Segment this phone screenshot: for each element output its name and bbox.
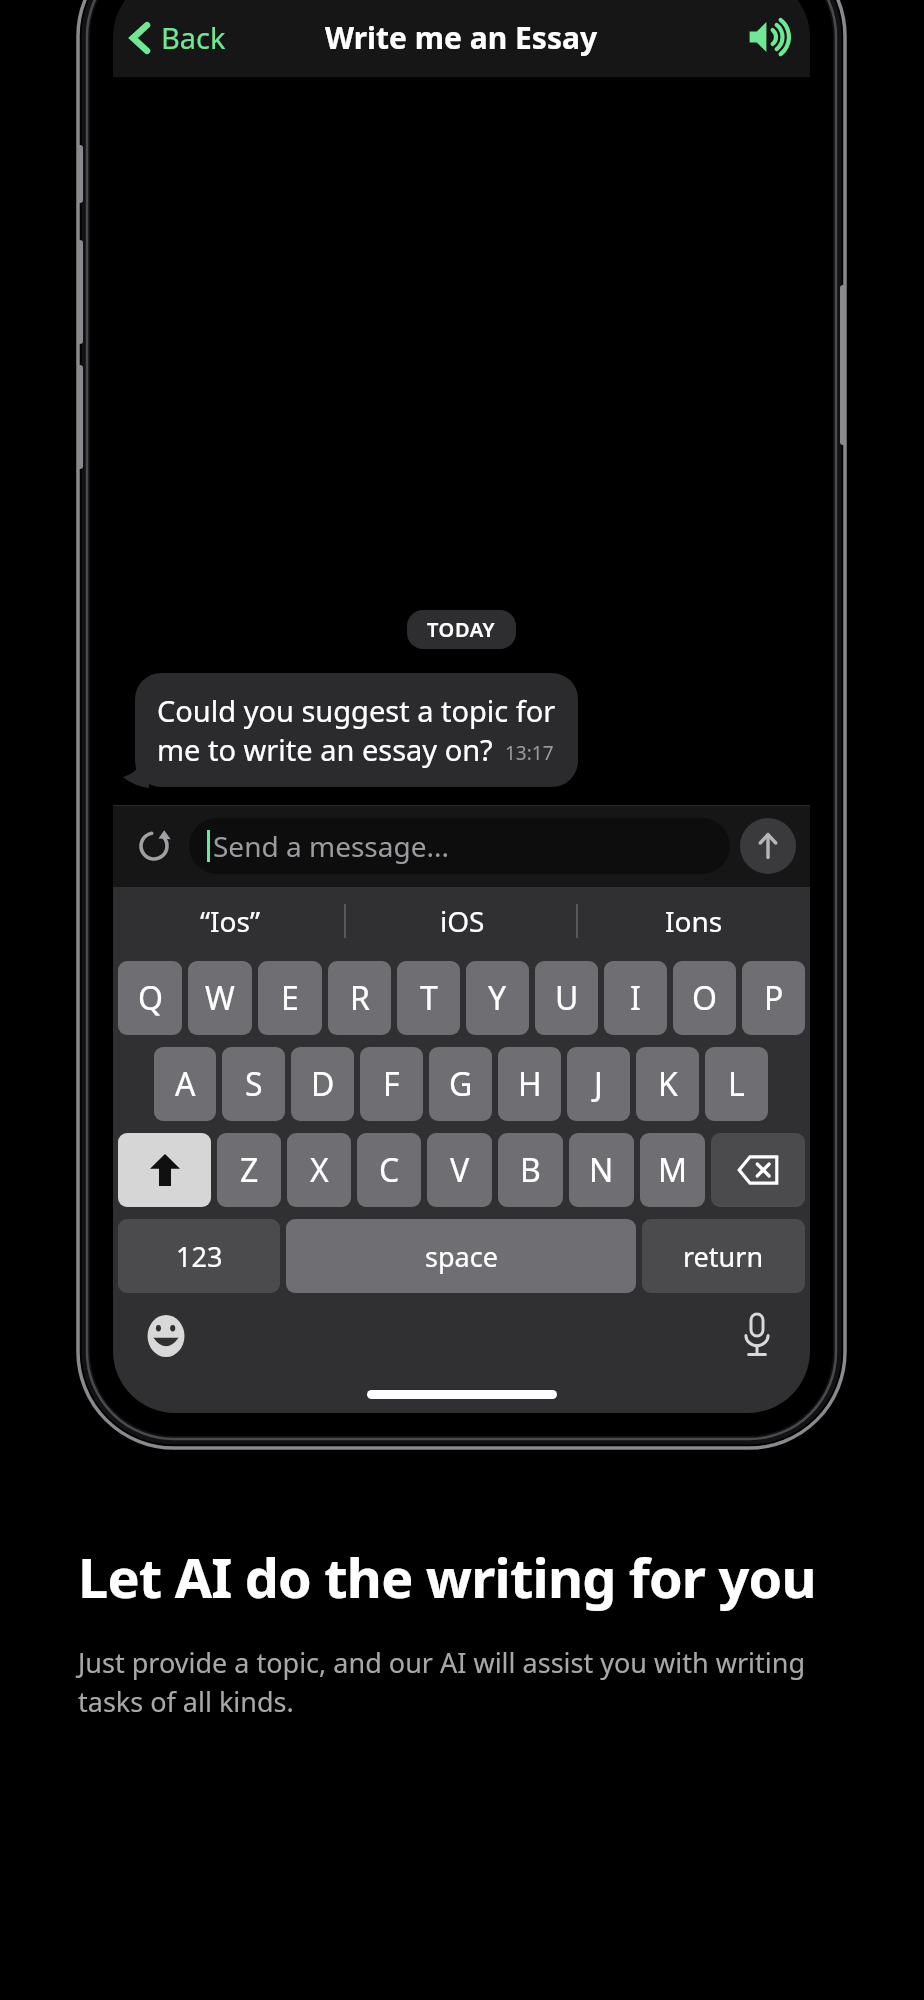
button[interactable]: Send a message... [189,818,730,874]
staticText: E [281,976,299,1020]
button[interactable]: Refresh [127,819,181,873]
staticText: iOS [440,902,485,940]
button[interactable]: Dictation [728,1307,786,1365]
staticText: space [425,1238,498,1275]
staticText: return [683,1238,764,1275]
button[interactable]: J [567,1047,630,1121]
staticText: O [692,976,717,1020]
button[interactable]: Y [466,961,529,1035]
button[interactable]: O [673,961,736,1035]
staticText: Back [161,18,226,57]
staticText: N [589,1148,614,1192]
staticText: me to write an essay on? [157,730,493,769]
button[interactable]: D [291,1047,354,1121]
button[interactable]: W [188,961,252,1035]
staticText: T [420,976,438,1020]
staticText: Y [488,976,507,1020]
button[interactable]: 123 [118,1219,280,1293]
button[interactable]: P [742,961,805,1035]
button[interactable]: T [397,961,460,1035]
button[interactable]: R [328,961,391,1035]
button[interactable]: G [429,1047,492,1121]
button[interactable]: S [222,1047,285,1121]
button[interactable]: X [287,1133,351,1207]
staticText: K [658,1062,678,1106]
button[interactable]: I [604,961,667,1035]
button[interactable]: Toggle sound [742,11,794,63]
button[interactable]: iOS [346,887,578,955]
button[interactable]: C [357,1133,421,1207]
button[interactable]: U [535,961,598,1035]
button[interactable]: Could you suggest a topic for [135,673,578,787]
staticText: M [658,1148,688,1192]
button[interactable]: Shift [118,1133,211,1207]
button[interactable]: space [286,1219,636,1293]
button[interactable]: Z [217,1133,281,1207]
staticText: B [520,1148,541,1192]
staticText: Q [138,976,163,1020]
staticText: “Ios” [200,902,260,940]
staticText: A [175,1062,196,1106]
button[interactable]: M [640,1133,705,1207]
button[interactable]: Back [113,10,238,65]
staticText: 123 [176,1238,223,1275]
staticText: P [764,976,784,1020]
staticText: S [245,1062,263,1106]
staticText: W [205,976,235,1020]
staticText: D [311,1062,335,1106]
button[interactable]: V [427,1133,492,1207]
button[interactable]: N [569,1133,634,1207]
button[interactable]: return [642,1219,805,1293]
button[interactable]: Ions [578,887,810,955]
staticText: F [383,1062,400,1106]
staticText: R [350,976,370,1020]
button[interactable]: E [258,961,322,1035]
staticText: Z [240,1148,259,1192]
button[interactable]: Delete [711,1133,805,1207]
staticText: TODAY [427,616,496,643]
staticText: C [379,1148,400,1192]
button[interactable]: Q [118,961,182,1035]
staticText: H [518,1062,542,1106]
button[interactable]: B [498,1133,563,1207]
button[interactable]: A [154,1047,216,1121]
staticText: V [450,1148,470,1192]
button[interactable]: H [498,1047,561,1121]
staticText: U [555,976,579,1020]
button[interactable]: L [705,1047,768,1121]
staticText: Let AI do the writing for you [78,1540,816,1614]
button[interactable]: F [360,1047,423,1121]
button[interactable]: K [636,1047,699,1121]
staticText: J [594,1062,603,1106]
staticText: Ions [665,902,723,940]
staticText: Just provide a topic, and our AI will as… [78,1644,864,1720]
button[interactable]: Emoji [137,1307,195,1365]
staticText: Send a message... [213,827,449,865]
staticText: X [310,1148,329,1192]
staticText: Write me an Essay [325,17,598,58]
staticText: G [449,1062,473,1106]
button[interactable]: Send [740,818,796,874]
staticText: I [630,976,641,1020]
staticText: L [728,1062,745,1106]
staticText: 13:17 [505,740,554,766]
staticText: Could you suggest a topic for [157,691,556,730]
button[interactable]: “Ios” [113,887,346,955]
